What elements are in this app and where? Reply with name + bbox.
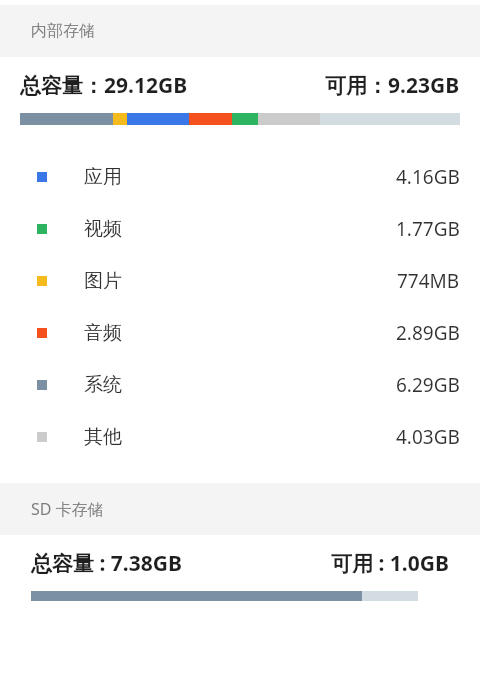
button[interactable]: 视频 xyxy=(0,203,480,255)
staticText: 774MB xyxy=(397,268,460,294)
staticText: 内部存储 xyxy=(31,21,95,41)
staticText: 其他 xyxy=(84,425,122,449)
staticText: 系统 xyxy=(84,373,122,397)
staticText: 4.16GB xyxy=(396,164,460,190)
staticText: 可用：9.23GB xyxy=(325,71,460,100)
staticText: 应用 xyxy=(84,165,122,189)
staticText: 视频 xyxy=(84,217,122,241)
button[interactable]: 其他 xyxy=(0,411,480,463)
button[interactable]: 应用 xyxy=(0,151,480,203)
staticText: SD 卡存储 xyxy=(31,498,104,520)
button[interactable]: 音频 xyxy=(0,307,480,359)
button[interactable]: 图片 xyxy=(0,255,480,307)
staticText: 1.77GB xyxy=(396,216,460,242)
staticText: 音频 xyxy=(84,321,122,345)
button[interactable]: 系统 xyxy=(0,359,480,411)
staticText: 2.89GB xyxy=(396,320,460,346)
staticText: 总容量 : 7.38GB xyxy=(31,549,182,578)
staticText: 可用 : 1.0GB xyxy=(331,549,449,578)
staticText: 总容量：29.12GB xyxy=(20,71,188,100)
staticText: 6.29GB xyxy=(396,372,460,398)
staticText: 4.03GB xyxy=(396,424,460,450)
staticText: 图片 xyxy=(84,269,122,293)
